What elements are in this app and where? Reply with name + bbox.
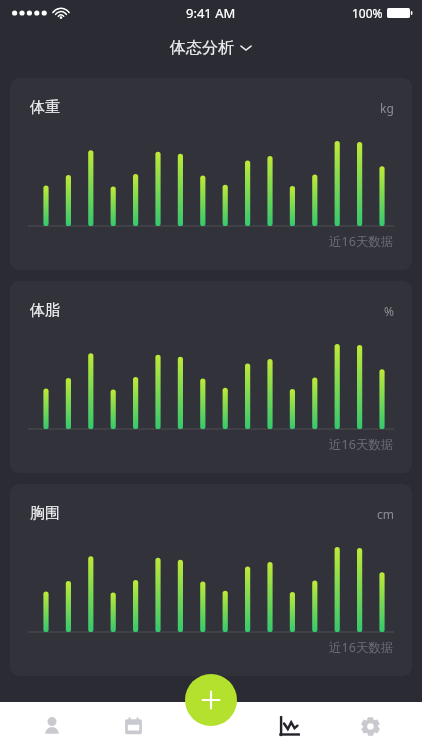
staticText: 体重 bbox=[30, 98, 60, 117]
button[interactable]: Statistics bbox=[259, 702, 319, 750]
staticText: 胸围 bbox=[30, 504, 60, 523]
button[interactable]: 体态分析 bbox=[0, 26, 422, 70]
button[interactable]: 体重 bbox=[10, 78, 412, 270]
button[interactable]: Profile bbox=[22, 702, 82, 750]
button[interactable]: 胸围 bbox=[10, 484, 412, 676]
staticText: kg bbox=[380, 100, 394, 116]
staticText: % bbox=[384, 303, 394, 319]
staticText: 近16天数据 bbox=[329, 233, 394, 250]
staticText: 100% bbox=[352, 5, 383, 21]
staticText: 9:41 AM bbox=[186, 4, 236, 22]
staticText: 体脂 bbox=[30, 301, 60, 320]
staticText: 体态分析 bbox=[170, 38, 234, 58]
staticText: cm bbox=[377, 506, 394, 522]
button[interactable]: Settings bbox=[340, 702, 400, 750]
button[interactable]: Calendar bbox=[103, 702, 163, 750]
button[interactable]: 体脂 bbox=[10, 281, 412, 473]
staticText: 近16天数据 bbox=[329, 639, 394, 656]
staticText: 近16天数据 bbox=[329, 436, 394, 453]
button[interactable]: Add record bbox=[185, 674, 237, 726]
